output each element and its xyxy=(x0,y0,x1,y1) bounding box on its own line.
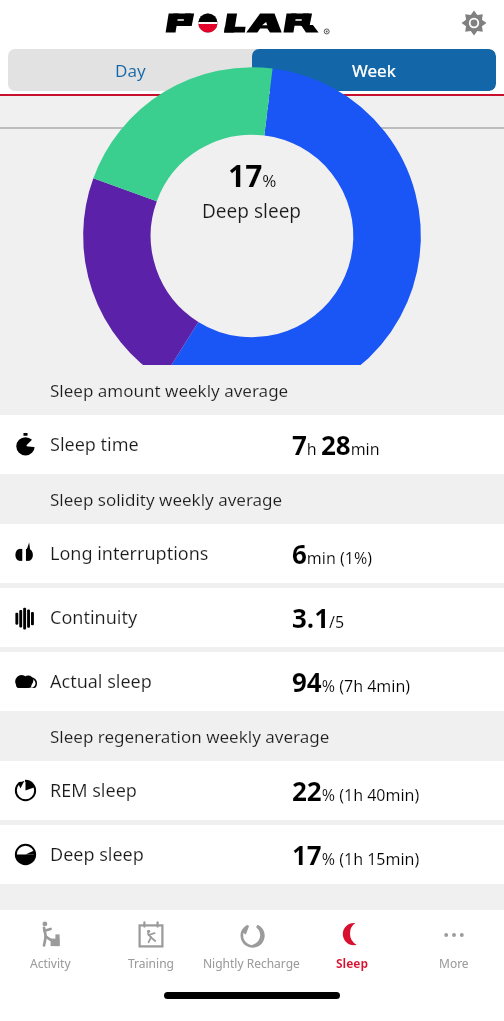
staticText: Deep sleep xyxy=(202,198,302,224)
staticText: Continuity xyxy=(50,605,138,630)
button[interactable]: Long interruptions xyxy=(0,524,504,583)
staticText: Day xyxy=(115,59,146,82)
button[interactable]: Deep sleep xyxy=(0,825,504,884)
staticText: 22% (1h 40min) xyxy=(292,773,420,808)
staticText: Sleep regeneration weekly average xyxy=(50,725,330,748)
staticText: Sleep solidity weekly average xyxy=(50,488,283,511)
button[interactable]: More xyxy=(403,910,504,980)
staticText: Sleep xyxy=(336,955,369,971)
staticText: Nightly Recharge xyxy=(203,955,300,971)
staticText: 94% (7h 4min) xyxy=(292,664,411,699)
button[interactable]: Nightly Recharge xyxy=(201,910,302,980)
button[interactable]: Sleep xyxy=(302,910,403,980)
staticText: Sleep time xyxy=(50,432,139,457)
button[interactable]: Day xyxy=(8,49,252,91)
staticText: More xyxy=(439,955,469,971)
staticText: 6min (1%) xyxy=(292,536,373,571)
staticText: Training xyxy=(128,955,174,971)
button[interactable]: Settings xyxy=(454,3,494,43)
button[interactable]: Continuity xyxy=(0,588,504,647)
staticText: 3.1/5 xyxy=(292,600,345,635)
staticText: Week xyxy=(352,59,396,82)
button[interactable]: Activity xyxy=(0,910,100,980)
staticText: 17% xyxy=(228,155,277,196)
staticText: REM sleep xyxy=(50,778,137,803)
button[interactable]: Training xyxy=(100,910,201,980)
staticText: Sleep amount weekly average xyxy=(50,379,289,402)
staticText: 17% (1h 15min) xyxy=(292,837,420,872)
staticText: 7h 28min xyxy=(292,427,380,462)
staticText: Sleep summary xyxy=(198,102,307,122)
button[interactable]: REM sleep xyxy=(0,761,504,820)
button[interactable]: Actual sleep xyxy=(0,652,504,711)
staticText: Activity xyxy=(30,955,71,971)
button[interactable]: Sleep time xyxy=(0,415,504,474)
button[interactable]: Week xyxy=(252,49,496,91)
staticText: Actual sleep xyxy=(50,669,152,694)
staticText: Deep sleep xyxy=(50,842,144,867)
staticText: Long interruptions xyxy=(50,541,209,566)
